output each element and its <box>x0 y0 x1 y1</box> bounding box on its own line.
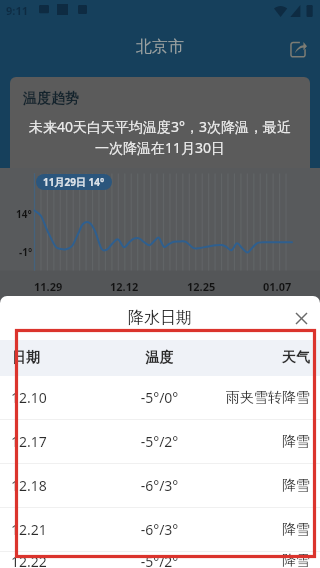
staticText: 北京市 <box>136 37 184 57</box>
staticText: 9:11 <box>6 3 28 18</box>
button[interactable]: Share <box>279 30 317 68</box>
staticText: 01.07 <box>263 279 292 294</box>
button[interactable]: 12.21 <box>0 508 320 551</box>
button[interactable]: 12.10 <box>0 376 320 419</box>
button[interactable]: Close <box>284 301 318 335</box>
staticText: 天气 <box>213 349 310 367</box>
staticText: 14° <box>16 207 32 221</box>
staticText: 降雪 <box>213 552 310 568</box>
staticText: 11月29日 14° <box>43 175 105 189</box>
staticText: 降雪 <box>213 433 310 451</box>
staticText: 降雪 <box>213 521 310 539</box>
staticText: 温度趋势 <box>23 90 79 108</box>
staticText: 12.18 <box>11 476 106 495</box>
staticText: -6°/3° <box>106 520 213 539</box>
staticText: -5°/0° <box>106 388 213 407</box>
staticText: -5°/2° <box>106 432 213 451</box>
staticText: 12.10 <box>11 388 106 407</box>
staticText: 12.12 <box>110 279 139 294</box>
staticText: 12.25 <box>187 279 216 294</box>
button[interactable]: 12.18 <box>0 464 320 507</box>
button[interactable]: 12.17 <box>0 420 320 463</box>
staticText: 12.17 <box>11 432 106 451</box>
staticText: -1° <box>19 245 33 259</box>
staticText: 未来40天白天平均温度3°，3次降温，最近 一次降温在11月30日 <box>18 117 302 158</box>
staticText: 温度 <box>106 349 213 367</box>
staticText: 降水日期 <box>128 308 192 328</box>
staticText: 11.29 <box>34 279 63 294</box>
staticText: -6°/3° <box>106 476 213 495</box>
staticText: 日期 <box>12 349 106 367</box>
staticText: -5°/2° <box>106 552 213 568</box>
staticText: 雨夹雪转降雪 <box>213 389 310 407</box>
staticText: 12.22 <box>11 552 106 568</box>
staticText: 12.21 <box>11 520 106 539</box>
staticText: 降雪 <box>213 477 310 495</box>
button[interactable]: 12.22 <box>0 552 320 568</box>
